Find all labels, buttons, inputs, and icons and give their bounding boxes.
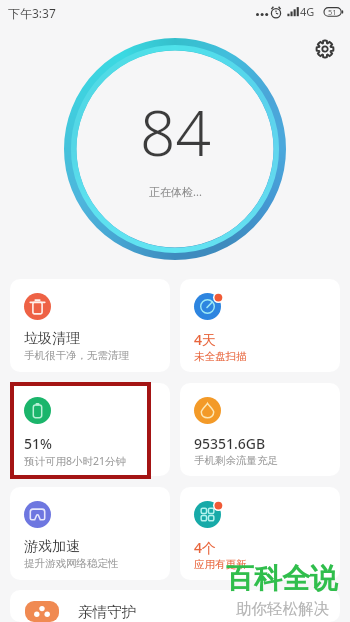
staticText: 手机很干净，无需清理 [24,349,129,362]
staticText: 百科全说 [226,561,338,596]
staticText: 正在体检... [149,184,202,199]
staticText: 提升游戏网络稳定性 [24,557,119,570]
staticText: 95351.6GB [194,434,266,453]
button[interactable]: 4天 [180,279,340,372]
button[interactable]: 游戏加速 [10,487,170,580]
staticText: 51 [328,7,337,16]
staticText: 预计可用8小时21分钟 [24,454,127,468]
staticText: 下午3:37 [8,5,56,21]
button[interactable]: 亲情守护 [10,590,340,622]
button[interactable]: 51% [10,383,170,476]
staticText: 4天 [194,330,217,349]
button[interactable]: Settings [309,33,341,65]
staticText: 4G [300,4,315,19]
staticText: 4个 [194,538,217,557]
button[interactable]: 95351.6GB [180,383,340,476]
staticText: 垃圾清理 [24,330,80,348]
staticText: 51% [24,434,52,453]
staticText: 应用有更新 [194,558,247,571]
staticText: 助你轻松解决 [236,599,329,619]
staticText: 游戏加速 [24,538,80,556]
staticText: 亲情守护 [78,603,136,621]
button[interactable]: 垃圾清理 [10,279,170,372]
staticText: 84 [140,90,211,174]
staticText: 未全盘扫描 [194,350,247,363]
staticText: 手机剩余流量充足 [194,454,278,467]
button[interactable]: 4个 [180,487,340,580]
